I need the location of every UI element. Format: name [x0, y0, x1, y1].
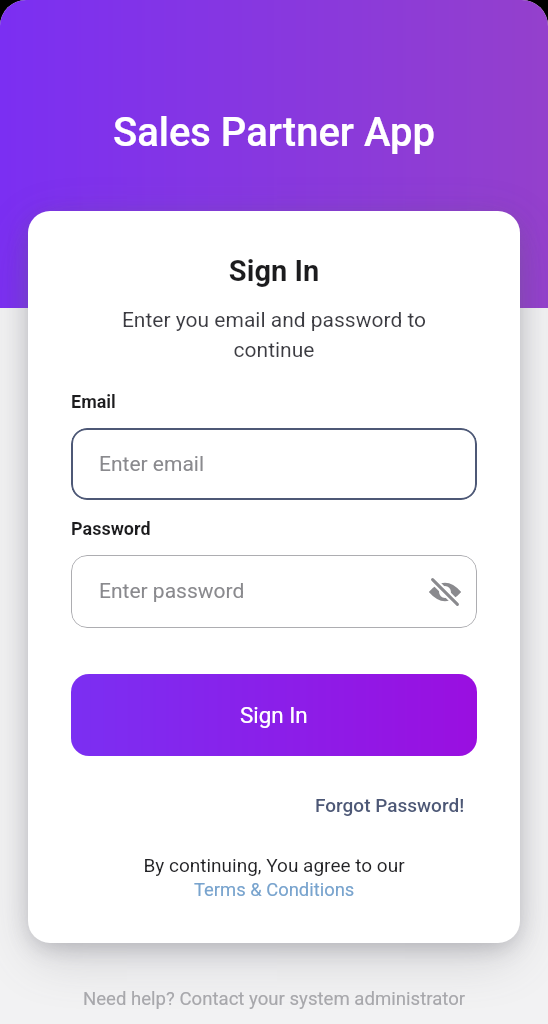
staticText: Email — [71, 391, 116, 412]
staticText: Enter email — [99, 452, 205, 477]
staticText: Sign In — [28, 254, 520, 288]
button[interactable]: Forgot Password! — [315, 794, 465, 816]
button[interactable]: Terms & Conditions — [194, 879, 355, 901]
staticText: Password — [71, 518, 151, 539]
button[interactable]: Sign In — [71, 674, 477, 756]
staticText: Sign In — [240, 702, 308, 728]
staticText: Enter password — [99, 579, 245, 604]
staticText: Need help? Contact your system administr… — [0, 988, 548, 1010]
staticText: By continuing, You agree to our — [143, 854, 405, 876]
staticText: Sales Partner App — [0, 109, 548, 156]
staticText: Forgot Password! — [315, 794, 465, 816]
button[interactable]: Show password — [427, 574, 463, 610]
button[interactable]: Enter email — [71, 428, 477, 500]
staticText: Enter you email and password to continue — [113, 308, 435, 362]
button[interactable]: Enter password — [71, 555, 477, 628]
